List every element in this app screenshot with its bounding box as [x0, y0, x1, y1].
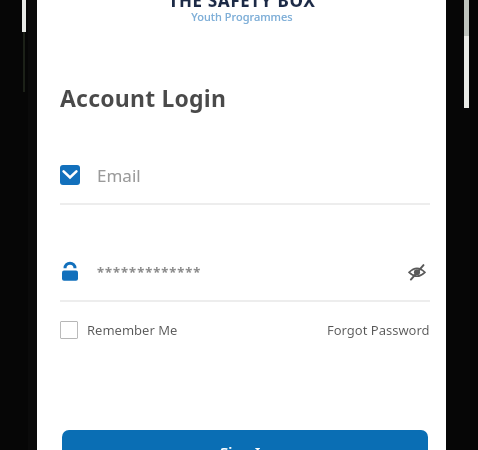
staticText: Forgot Password: [327, 321, 430, 339]
staticText: Youth Programmes: [191, 9, 293, 24]
staticText: Remember Me: [87, 321, 178, 339]
button[interactable]: Password: [60, 252, 430, 292]
other: Email: [60, 165, 80, 185]
staticText: * * * * * * * * * * * * *: [97, 263, 200, 281]
button[interactable]: Sign In: [62, 430, 428, 450]
button[interactable]: Remember Me: [60, 321, 182, 339]
other: Password: [60, 262, 80, 282]
staticText: Account Login: [60, 82, 227, 113]
button[interactable]: Forgot Password: [327, 321, 430, 339]
staticText: Sign In: [220, 442, 270, 450]
staticText: THE SAFETY BOX: [168, 0, 316, 12]
button[interactable]: Email: [60, 155, 430, 195]
button[interactable]: Show password: [404, 259, 430, 285]
staticText: Email: [97, 164, 141, 187]
